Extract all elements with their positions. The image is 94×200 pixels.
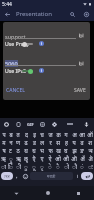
button[interactable]: Recent apps: [63, 186, 94, 200]
button[interactable]: फ: [46, 146, 54, 154]
button[interactable]: द: [22, 130, 30, 138]
button[interactable]: ॡ: [22, 154, 30, 162]
button[interactable]: थ: [22, 146, 30, 154]
staticText: न: [9, 139, 13, 146]
button[interactable]: ञ: [86, 146, 94, 154]
button[interactable]: ?१२: [1, 172, 13, 180]
button[interactable]: SAVE: [72, 85, 88, 96]
button[interactable]: ृ: [38, 162, 46, 170]
button[interactable]: ए: [38, 154, 46, 162]
button[interactable]: य: [70, 138, 78, 146]
button[interactable]: भ: [38, 146, 46, 154]
button[interactable]: ऎ: [30, 154, 38, 162]
button[interactable]: क: [54, 130, 62, 138]
button[interactable]: त: [14, 130, 22, 138]
button[interactable]: ॠ: [14, 154, 22, 162]
button[interactable]: ढ: [22, 138, 30, 146]
button[interactable]: Stickers: [36, 118, 48, 130]
staticText: ॠ: [16, 155, 21, 162]
staticText: ः: [88, 163, 93, 170]
button[interactable]: ज: [46, 130, 54, 138]
button[interactable]: ा: [0, 162, 7, 170]
staticText: ऒ: [71, 155, 77, 162]
staticText: ब: [9, 131, 13, 138]
button[interactable]: Period: [73, 172, 81, 180]
button[interactable]: न: [7, 138, 14, 146]
button[interactable]: Use IPv6: [3, 65, 90, 76]
button[interactable]: More info: [37, 39, 46, 48]
button[interactable]: Hide keyboard: [0, 186, 32, 200]
button[interactable]: ख: [54, 146, 62, 154]
button[interactable]: Emoji: [21, 172, 30, 180]
button[interactable]: ऒ: [70, 154, 78, 162]
button[interactable]: Google Assistant: [0, 118, 12, 130]
button[interactable]: ः: [86, 162, 94, 170]
button[interactable]: CANCEL: [4, 85, 27, 96]
button[interactable]: Voice input: [80, 118, 93, 130]
button[interactable]: Clear user name: [77, 31, 86, 40]
button[interactable]: व: [78, 138, 86, 146]
button[interactable]: More options: [63, 118, 77, 130]
button[interactable]: ण: [14, 138, 22, 146]
button[interactable]: ध: [30, 146, 38, 154]
button[interactable]: म: [0, 138, 7, 146]
button[interactable]: ट: [7, 146, 14, 154]
button[interactable]: े: [46, 162, 54, 170]
button[interactable]: ब: [7, 130, 14, 138]
staticText: ल: [40, 139, 44, 146]
button[interactable]: ङ: [78, 146, 86, 154]
button[interactable]: ग: [62, 130, 70, 138]
button[interactable]: घ: [62, 146, 70, 154]
button[interactable]: ं: [78, 162, 86, 170]
button[interactable]: ल: [38, 138, 46, 146]
button[interactable]: प: [0, 130, 7, 138]
button[interactable]: Space: [30, 172, 73, 180]
button[interactable]: ऋ: [0, 154, 7, 162]
button[interactable]: Add account: [79, 7, 93, 21]
button[interactable]: ठ: [14, 146, 22, 154]
button[interactable]: Back: [0, 7, 14, 21]
button[interactable]: ू: [30, 162, 38, 170]
button[interactable]: आ: [78, 130, 86, 138]
button[interactable]: Home: [32, 186, 63, 200]
button[interactable]: GIF: [24, 118, 36, 130]
button[interactable]: च: [38, 130, 46, 138]
staticText: ऄ: [88, 155, 93, 162]
button[interactable]: ष: [0, 146, 7, 154]
button[interactable]: ॄ: [7, 154, 14, 162]
button[interactable]: Comma: [13, 172, 21, 180]
button[interactable]: झ: [70, 146, 78, 154]
button[interactable]: Use Proxy: [3, 38, 90, 49]
button[interactable]: ह: [62, 138, 70, 146]
button[interactable]: ी: [14, 162, 22, 170]
button[interactable]: ो: [62, 162, 70, 170]
button[interactable]: ऄ: [86, 154, 94, 162]
button[interactable]: Clear port: [77, 59, 86, 68]
button[interactable]: ओ: [54, 154, 62, 162]
button[interactable]: Enter: [81, 172, 93, 180]
button[interactable]: ु: [22, 162, 30, 170]
button[interactable]: स: [54, 138, 62, 146]
staticText: Use IPv6: [5, 67, 27, 74]
button[interactable]: ऐ: [46, 154, 54, 162]
button[interactable]: ै: [54, 162, 62, 170]
button[interactable]: इ: [30, 130, 38, 138]
button[interactable]: ौ: [70, 162, 78, 170]
button[interactable]: औ: [62, 154, 70, 162]
staticText: ध: [32, 147, 36, 154]
staticText: अ: [72, 131, 77, 138]
button[interactable]: ि: [7, 162, 14, 170]
button[interactable]: Clipboard: [12, 118, 24, 130]
button[interactable]: अ: [70, 130, 78, 138]
button[interactable]: ड: [30, 138, 38, 146]
button[interactable]: Search: [65, 7, 79, 21]
button[interactable]: ऑ: [86, 130, 94, 138]
staticText: श: [88, 139, 92, 146]
button[interactable]: ॲ: [78, 154, 86, 162]
staticText: क: [56, 131, 61, 138]
button[interactable]: र: [46, 138, 54, 146]
staticText: म: [2, 139, 6, 146]
button[interactable]: श: [86, 138, 94, 146]
button[interactable]: More info: [37, 66, 46, 75]
button[interactable]: Keyboard settings: [48, 118, 60, 130]
